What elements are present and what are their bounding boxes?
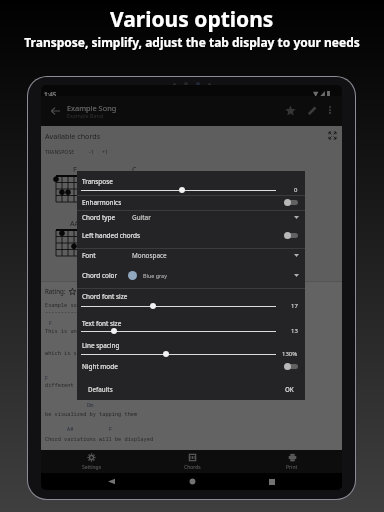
staticText: ------------ xyxy=(45,308,84,315)
staticText: Defaults xyxy=(88,385,113,393)
staticText: Chord font size xyxy=(82,292,128,301)
staticText: Transpose, simplify, adjust the tab disp… xyxy=(24,34,360,50)
button[interactable]: Enharmonics xyxy=(77,196,305,209)
button[interactable]: D xyxy=(115,218,149,257)
button[interactable]: Back xyxy=(46,102,64,120)
staticText: 1:45 xyxy=(44,90,57,98)
button[interactable] xyxy=(81,302,276,310)
button[interactable]: Defaults xyxy=(86,383,115,395)
staticText: F xyxy=(45,374,49,381)
staticText: Left handed chords xyxy=(82,231,141,240)
staticText: +1 xyxy=(102,148,108,155)
staticText: different chords can xyxy=(45,381,109,388)
button[interactable]: Settings xyxy=(41,450,142,473)
staticText: Chords xyxy=(184,464,201,471)
staticText: This is an example song xyxy=(45,327,119,334)
button[interactable]: Chord type xyxy=(77,210,305,224)
button[interactable]: Fullscreen xyxy=(327,130,338,141)
staticText: A# xyxy=(70,218,80,228)
staticText: Transpose xyxy=(82,177,113,186)
staticText: D xyxy=(131,218,137,228)
button[interactable]: Font xyxy=(77,248,305,262)
staticText: Blue gray xyxy=(143,272,167,279)
staticText: 130% xyxy=(282,350,298,358)
staticText: TRANSPOSE xyxy=(45,148,75,155)
staticText: 17 xyxy=(291,302,298,310)
button[interactable]: More options xyxy=(322,102,338,118)
staticText: Rating: xyxy=(45,287,66,295)
staticText: Chord color xyxy=(82,271,118,280)
button[interactable]: Recents xyxy=(262,473,282,490)
staticText: Monospace xyxy=(132,251,167,260)
button[interactable]: F xyxy=(56,164,90,203)
staticText: Chord type xyxy=(82,213,116,222)
staticText: Dm xyxy=(87,401,94,408)
staticText: Chord variations will be displayed xyxy=(45,435,154,442)
button[interactable] xyxy=(81,350,276,358)
button[interactable]: Back xyxy=(101,473,121,490)
button[interactable]: Print xyxy=(242,450,342,473)
staticText: Print xyxy=(286,464,298,471)
staticText: Available chords xyxy=(45,131,101,141)
staticText: Enharmonics xyxy=(82,198,122,207)
button[interactable]: +1 xyxy=(101,148,109,155)
button[interactable]: Left handed chords xyxy=(77,229,305,242)
staticText: Font xyxy=(82,251,96,260)
staticText: Night mode xyxy=(82,362,118,371)
button[interactable]: A# xyxy=(56,218,90,257)
staticText: be visualized by tapping them xyxy=(45,410,138,417)
staticText: Line spacing xyxy=(82,341,120,350)
button[interactable] xyxy=(81,186,276,194)
staticText: 0 xyxy=(294,186,298,194)
button[interactable] xyxy=(81,327,276,335)
staticText: which is shown here xyxy=(45,349,106,356)
button[interactable]: C xyxy=(115,164,149,203)
button[interactable]: Chords xyxy=(142,450,242,473)
staticText: Example Song xyxy=(67,103,117,113)
button[interactable]: Chord color xyxy=(77,268,305,282)
staticText: Settings xyxy=(82,464,102,471)
staticText: A# xyxy=(67,425,74,432)
button[interactable]: Edit xyxy=(303,102,320,119)
staticText: F xyxy=(73,164,77,174)
staticText: Text font size xyxy=(82,319,122,328)
button[interactable]: -1 xyxy=(88,148,95,155)
staticText: C xyxy=(132,164,137,174)
staticText: Guitar xyxy=(132,213,151,222)
staticText: Example Band xyxy=(67,112,104,119)
button[interactable]: Favorite xyxy=(282,102,299,119)
staticText: Various options xyxy=(110,5,274,34)
button[interactable]: OK xyxy=(283,383,296,395)
staticText: Example song xyxy=(45,301,84,308)
button[interactable]: Home xyxy=(182,473,202,490)
staticText: F xyxy=(49,319,53,326)
staticText: F xyxy=(109,425,113,432)
staticText: -1 xyxy=(89,148,94,155)
button[interactable]: Night mode xyxy=(77,360,305,373)
staticText: 13 xyxy=(291,327,298,335)
staticText: OK xyxy=(285,385,294,393)
